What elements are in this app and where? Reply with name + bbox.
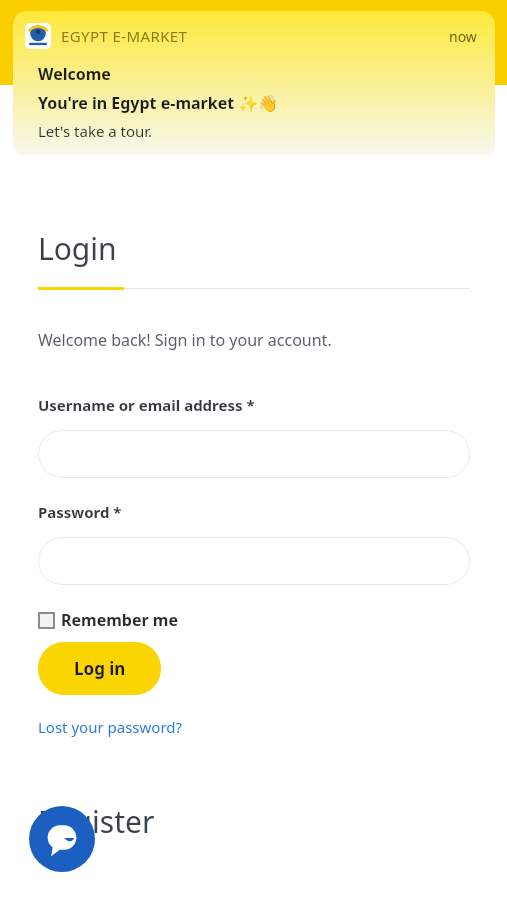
staticText: Let's take a tour. <box>38 121 153 141</box>
staticText: now <box>449 27 477 46</box>
staticText: Login <box>38 228 117 269</box>
staticText: Log in <box>74 657 126 680</box>
staticText: EGYPT E-MARKET <box>61 26 188 46</box>
button[interactable]: EGYPT E-MARKET <box>13 11 495 155</box>
button[interactable]: Remember me <box>38 609 178 631</box>
staticText: Remember me <box>61 609 178 631</box>
staticText: Welcome <box>38 63 111 85</box>
staticText: Welcome back! Sign in to your account. <box>38 329 332 351</box>
staticText: Username or email address * <box>38 395 255 415</box>
button[interactable] <box>38 537 470 585</box>
button[interactable]: Log in <box>38 642 161 695</box>
button[interactable]: Open chat <box>29 806 95 872</box>
staticText: Password * <box>38 502 122 522</box>
staticText: Register <box>38 801 155 842</box>
button[interactable] <box>38 430 470 478</box>
staticText: You're in Egypt e-market ✨👋 <box>38 92 279 114</box>
button[interactable]: Lost your password? <box>38 717 183 737</box>
